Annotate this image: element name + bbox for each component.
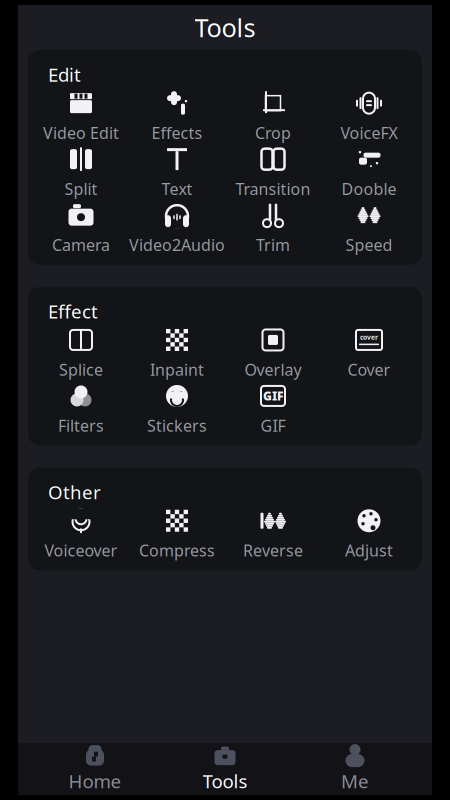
button[interactable]: Inpaint bbox=[129, 326, 225, 382]
staticText: Tools bbox=[194, 11, 255, 44]
staticText: GIF bbox=[260, 415, 285, 436]
button[interactable]: VoiceFX bbox=[321, 89, 417, 145]
button[interactable]: Overlay bbox=[225, 326, 321, 382]
button[interactable]: Crop bbox=[225, 89, 321, 145]
staticText: Video2Audio bbox=[129, 234, 225, 255]
staticText: Trim bbox=[256, 234, 290, 255]
button[interactable]: Tools bbox=[160, 743, 290, 795]
staticText: Split bbox=[64, 178, 97, 199]
staticText: Reverse bbox=[243, 540, 303, 561]
button[interactable]: Text bbox=[129, 145, 225, 201]
staticText: Adjust bbox=[345, 540, 393, 561]
staticText: GIF bbox=[263, 388, 283, 404]
button[interactable]: cover bbox=[321, 326, 417, 382]
button[interactable]: Video Edit bbox=[33, 89, 129, 145]
button[interactable]: Speed bbox=[321, 201, 417, 257]
staticText: Inpaint bbox=[150, 359, 204, 380]
staticText: Home bbox=[68, 769, 121, 793]
button[interactable]: Split bbox=[33, 145, 129, 201]
staticText: Effect bbox=[48, 299, 98, 324]
staticText: Crop bbox=[255, 122, 291, 143]
button[interactable]: Filters bbox=[33, 382, 129, 438]
button[interactable]: Adjust bbox=[321, 506, 417, 562]
button[interactable]: Camera bbox=[33, 201, 129, 257]
staticText: Tools bbox=[202, 769, 247, 793]
staticText: cover bbox=[360, 333, 378, 342]
staticText: Text bbox=[161, 178, 192, 199]
button[interactable]: Home bbox=[30, 743, 160, 795]
staticText: Edit bbox=[48, 62, 81, 87]
button[interactable]: Reverse bbox=[225, 506, 321, 562]
staticText: Cover bbox=[347, 359, 390, 380]
staticText: Compress bbox=[139, 540, 215, 561]
button[interactable]: Transition bbox=[225, 145, 321, 201]
staticText: Dooble bbox=[341, 178, 396, 199]
staticText: Camera bbox=[52, 234, 110, 255]
staticText: Transition bbox=[235, 178, 310, 199]
button[interactable]: Splice bbox=[33, 326, 129, 382]
button[interactable]: GIF bbox=[225, 382, 321, 438]
button[interactable]: Voiceover bbox=[33, 506, 129, 562]
staticText: VoiceFX bbox=[340, 122, 397, 143]
button[interactable]: Compress bbox=[129, 506, 225, 562]
button[interactable]: Effects bbox=[129, 89, 225, 145]
button[interactable]: Stickers bbox=[129, 382, 225, 438]
staticText: Filters bbox=[58, 415, 104, 436]
staticText: Stickers bbox=[147, 415, 207, 436]
button[interactable]: Trim bbox=[225, 201, 321, 257]
staticText: Me bbox=[341, 769, 369, 793]
staticText: Voiceover bbox=[44, 540, 117, 561]
staticText: Speed bbox=[345, 234, 392, 255]
staticText: Other bbox=[48, 480, 101, 504]
staticText: Video Edit bbox=[43, 122, 119, 143]
staticText: Effects bbox=[151, 122, 202, 143]
button[interactable]: Dooble bbox=[321, 145, 417, 201]
button[interactable]: Me bbox=[290, 743, 420, 795]
staticText: Splice bbox=[59, 359, 103, 380]
button[interactable]: Video2Audio bbox=[129, 201, 225, 257]
staticText: Overlay bbox=[244, 359, 301, 380]
